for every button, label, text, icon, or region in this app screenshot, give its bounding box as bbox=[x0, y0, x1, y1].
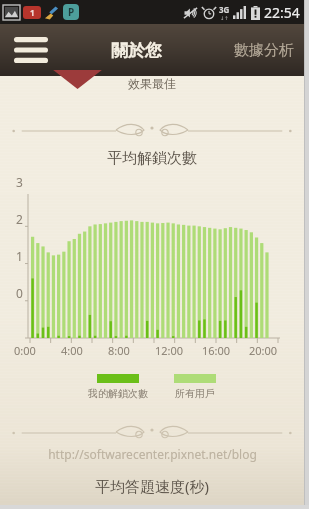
staticText: 8:00 bbox=[108, 343, 130, 358]
staticText: 平均解鎖次數 bbox=[107, 149, 197, 168]
staticText: 3 bbox=[16, 174, 23, 190]
button[interactable]: Menu bbox=[8, 32, 54, 68]
staticText: 我的解鎖次數 bbox=[88, 387, 148, 400]
staticText: 12:00 bbox=[155, 343, 184, 358]
staticText: 20:00 bbox=[249, 343, 278, 358]
staticText: 平均答題速度(秒) bbox=[95, 476, 210, 496]
button[interactable]: 數據分析 bbox=[224, 31, 304, 70]
staticText: 3G bbox=[219, 4, 230, 15]
staticText: 關於您 bbox=[111, 40, 162, 61]
staticText: 16:00 bbox=[202, 343, 231, 358]
staticText: ↓↑ bbox=[220, 15, 229, 21]
staticText: 2 bbox=[16, 211, 23, 227]
staticText: 效果最佳 bbox=[128, 76, 176, 91]
staticText: 0:00 bbox=[14, 343, 36, 358]
staticText: 4:00 bbox=[61, 343, 83, 358]
staticText: 22:54 bbox=[264, 3, 300, 22]
staticText: http://softwarecenter.pixnet.net/blog bbox=[48, 446, 257, 462]
staticText: 數據分析 bbox=[234, 41, 294, 60]
staticText: 1 bbox=[16, 248, 23, 264]
staticText: 1 bbox=[30, 7, 35, 18]
staticText: 所有用戶 bbox=[175, 387, 215, 400]
staticText: P bbox=[68, 5, 75, 19]
staticText: 0 bbox=[16, 285, 23, 301]
